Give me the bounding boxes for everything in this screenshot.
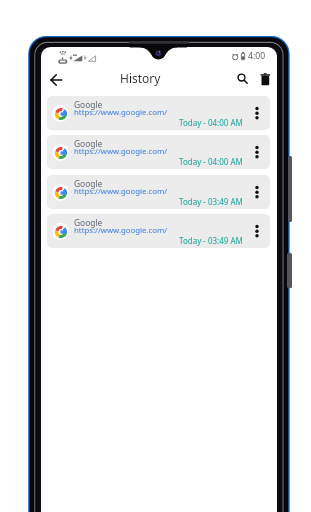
staticText: Today - 03:49 AM bbox=[179, 235, 243, 246]
button[interactable]: Search bbox=[230, 66, 252, 88]
button[interactable]: Clear history bbox=[254, 66, 276, 88]
staticText: History bbox=[120, 70, 161, 86]
staticText: https://www.google.com/ bbox=[74, 146, 168, 157]
button[interactable]: Google bbox=[47, 135, 270, 169]
staticText: Today - 04:00 AM bbox=[179, 156, 243, 167]
staticText: Today - 04:00 AM bbox=[179, 117, 243, 128]
button[interactable]: More options bbox=[249, 105, 265, 121]
button[interactable]: Google bbox=[47, 214, 270, 248]
staticText: Google bbox=[74, 217, 103, 228]
button[interactable]: More options bbox=[249, 223, 265, 239]
staticText: https://www.google.com/ bbox=[74, 225, 168, 236]
staticText: Google bbox=[74, 138, 103, 149]
button[interactable]: Back bbox=[45, 69, 67, 91]
staticText: https://www.google.com/ bbox=[74, 107, 168, 118]
staticText: Today - 03:49 AM bbox=[179, 196, 243, 207]
button[interactable]: Google bbox=[47, 96, 270, 130]
button[interactable]: Google bbox=[47, 175, 270, 209]
staticText: https://www.google.com/ bbox=[74, 186, 168, 197]
staticText: Google bbox=[74, 99, 103, 110]
staticText: 4:00 bbox=[248, 50, 266, 62]
staticText: Google bbox=[74, 178, 103, 189]
button[interactable]: More options bbox=[249, 184, 265, 200]
button[interactable]: More options bbox=[249, 144, 265, 160]
